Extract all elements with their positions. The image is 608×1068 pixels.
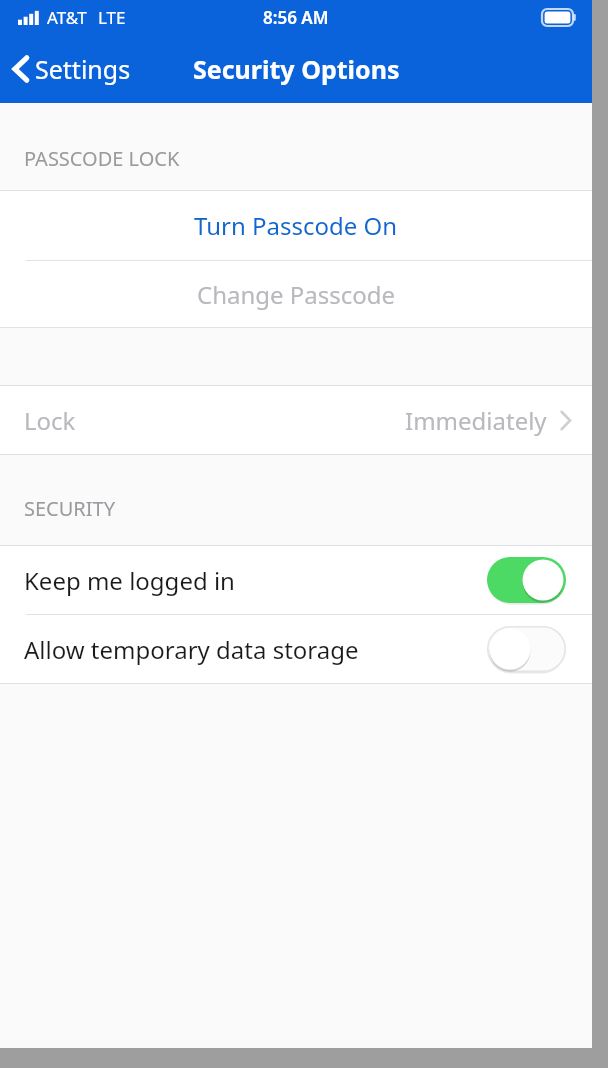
staticText: Change Passcode — [197, 278, 396, 311]
staticText: 8:56 AM — [263, 6, 329, 29]
button[interactable]: Allow temporary data storage — [0, 615, 592, 683]
staticText: PASSCODE LOCK — [24, 145, 180, 172]
staticText: Allow temporary data storage — [24, 633, 359, 666]
staticText: Immediately — [405, 404, 547, 437]
staticText: Lock — [24, 404, 76, 437]
button[interactable]: Keep me logged in — [0, 546, 592, 614]
button[interactable]: Lock — [0, 386, 592, 454]
button[interactable]: Toggle on — [487, 557, 566, 603]
staticText: Security Options — [193, 52, 400, 86]
staticText: Keep me logged in — [24, 564, 235, 597]
button[interactable]: Turn Passcode On — [0, 191, 592, 260]
button[interactable]: Settings — [0, 44, 145, 94]
staticText: Settings — [35, 52, 131, 86]
staticText: AT&T — [47, 6, 87, 29]
staticText: SECURITY — [24, 495, 116, 522]
button[interactable]: Change Passcode — [0, 261, 592, 327]
staticText: Turn Passcode On — [194, 209, 398, 242]
staticText: LTE — [98, 6, 126, 29]
button[interactable]: Toggle off — [487, 626, 566, 672]
